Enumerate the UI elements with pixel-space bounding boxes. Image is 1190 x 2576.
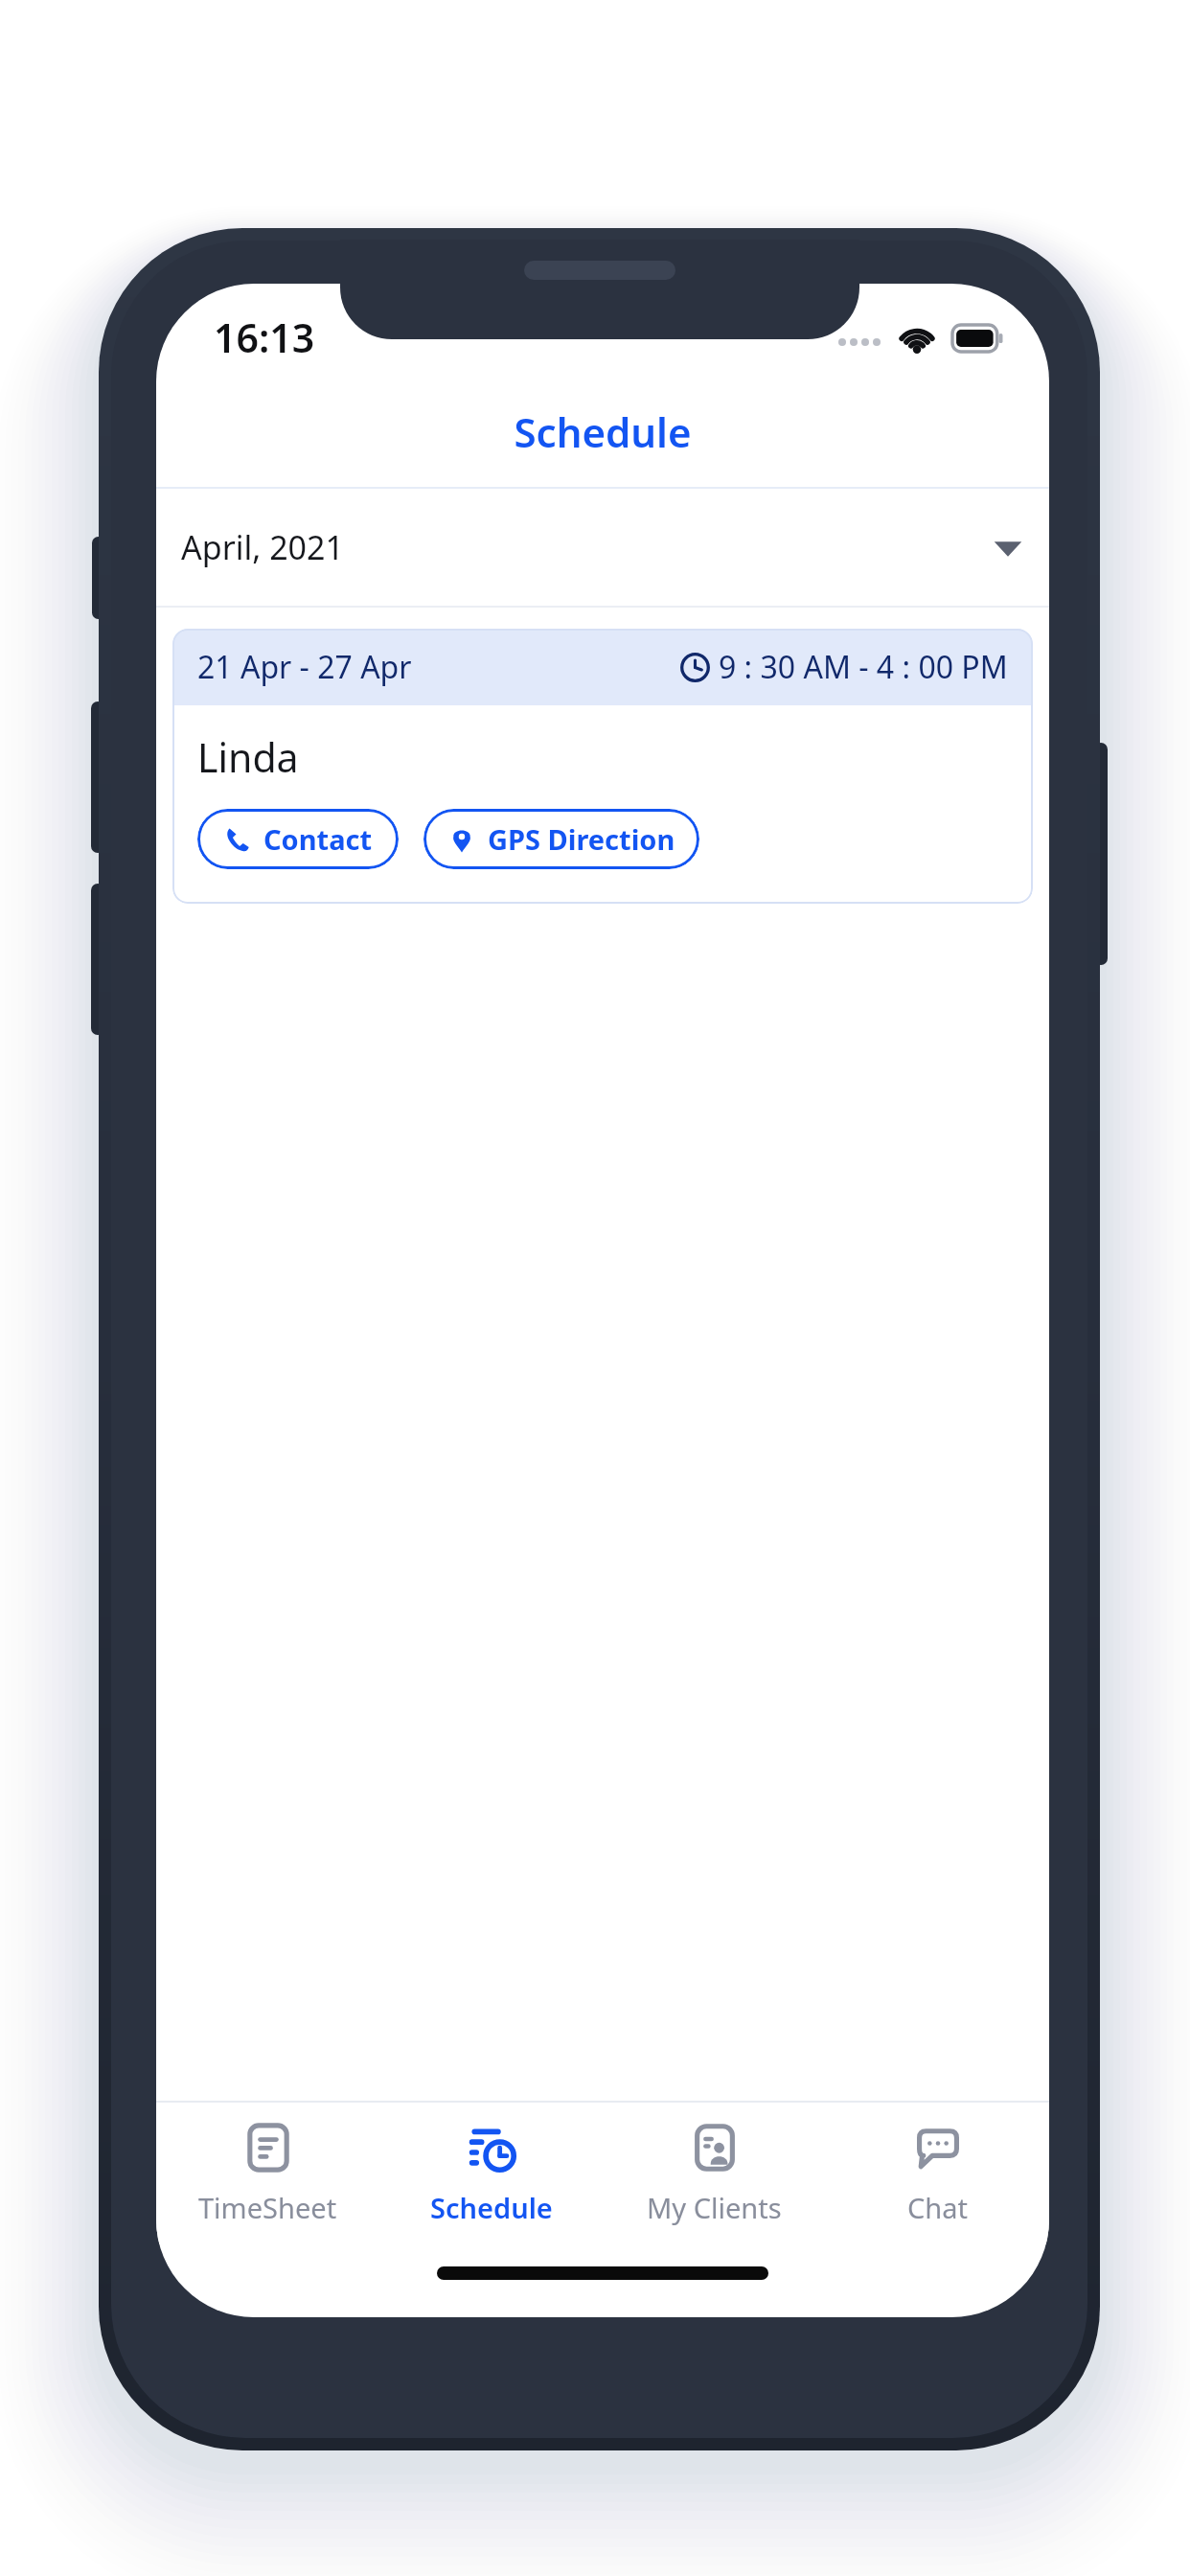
- staticText: TimeSheet: [198, 2189, 337, 2226]
- button[interactable]: Schedule: [379, 2103, 603, 2244]
- button[interactable]: April, 2021: [156, 489, 1049, 606]
- staticText: 16:13: [214, 310, 315, 364]
- staticText: Chat: [907, 2189, 968, 2226]
- button[interactable]: 21 Apr - 27 Apr: [172, 629, 1033, 904]
- staticText: Contact: [263, 820, 373, 858]
- staticText: Schedule: [430, 2189, 553, 2226]
- staticText: GPS Direction: [488, 820, 675, 858]
- other: Select month: [992, 531, 1024, 563]
- button[interactable]: Contact: [197, 809, 399, 869]
- button[interactable]: TimeSheet: [156, 2103, 379, 2244]
- staticText: April, 2021: [181, 525, 344, 569]
- staticText: Linda: [197, 730, 299, 784]
- staticText: My Clients: [647, 2189, 782, 2226]
- button[interactable]: My Clients: [603, 2103, 826, 2244]
- staticText: 21 Apr - 27 Apr: [197, 646, 412, 688]
- staticText: Schedule: [514, 404, 692, 459]
- button[interactable]: GPS Direction: [423, 809, 699, 869]
- button[interactable]: Chat: [826, 2103, 1049, 2244]
- staticText: 9 : 30 AM - 4 : 00 PM: [719, 646, 1008, 688]
